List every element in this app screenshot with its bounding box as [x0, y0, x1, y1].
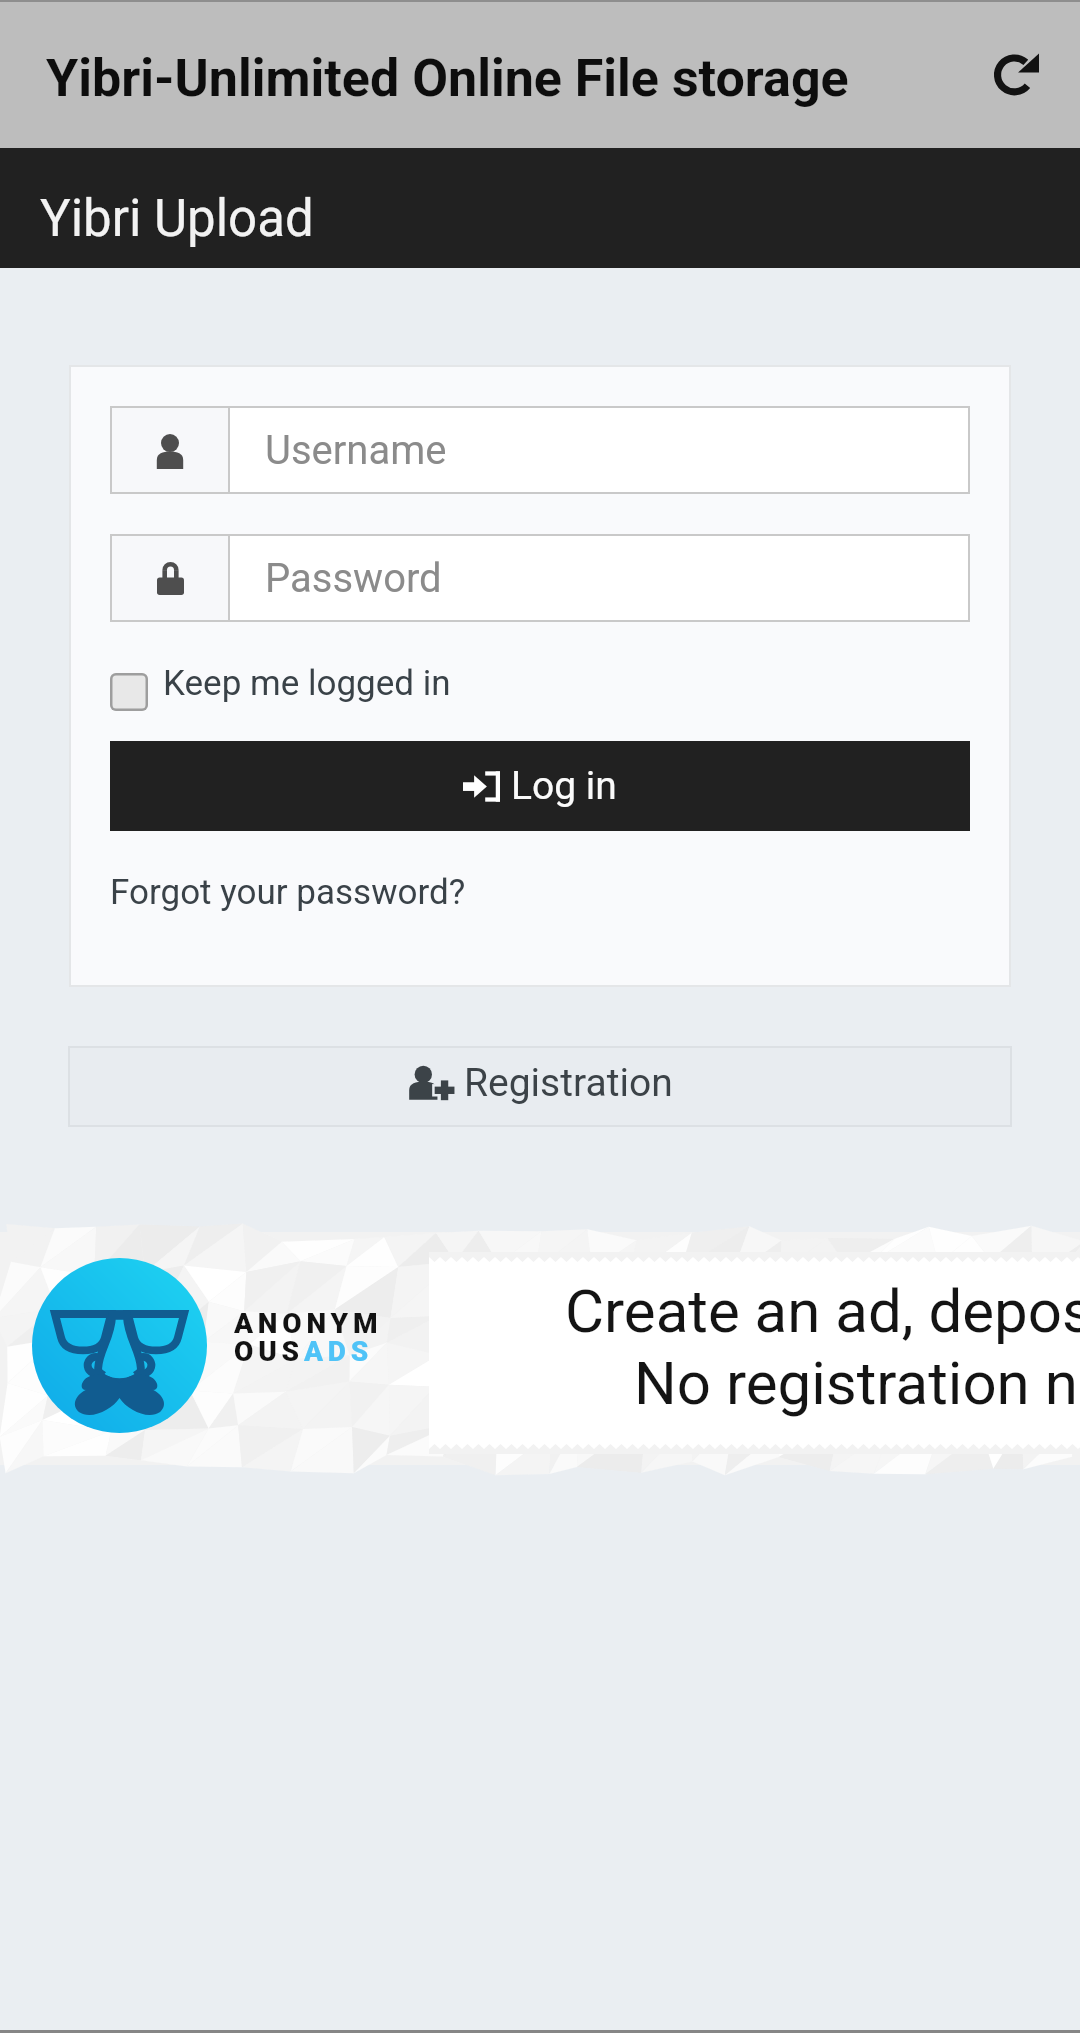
staticText: ADS — [304, 1335, 374, 1368]
staticText: Keep me logged in — [163, 663, 451, 704]
button[interactable]: Log in — [110, 741, 970, 831]
staticText: Create an ad, deposit — [565, 1276, 1080, 1346]
staticText: Yibri Upload — [40, 189, 314, 249]
button[interactable]: Forgot your password? — [110, 872, 466, 913]
staticText: ANONYM — [234, 1307, 383, 1340]
staticText: Yibri-Unlimited Online File storage — [46, 48, 849, 109]
button[interactable]: Keep me logged in — [110, 671, 970, 712]
staticText: No registration needed — [634, 1348, 1080, 1418]
staticText: Username — [265, 427, 447, 474]
button[interactable]: Username — [110, 406, 970, 494]
button[interactable]: Password — [110, 534, 970, 622]
button[interactable]: Registration — [68, 1046, 1012, 1127]
staticText: Log in — [511, 763, 617, 809]
staticText: Password — [265, 555, 442, 602]
staticText: OUS — [234, 1335, 304, 1368]
button[interactable]: Reload — [966, 25, 1066, 125]
staticText: Registration — [464, 1060, 673, 1106]
button[interactable]: Advertisement: Create an ad, deposit. No… — [0, 1232, 1080, 1465]
